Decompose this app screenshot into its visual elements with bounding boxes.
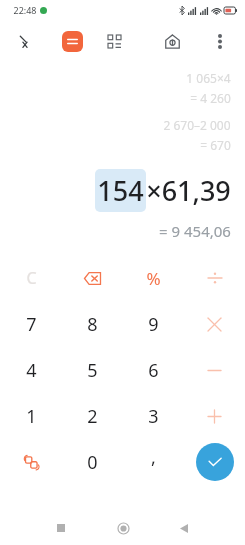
staticText: 3 — [148, 404, 159, 429]
button[interactable]: Recents — [48, 515, 74, 541]
staticText: 2 — [87, 404, 98, 429]
button[interactable]: 7 — [0, 301, 62, 347]
button[interactable]: Subtract — [184, 347, 245, 393]
button[interactable]: 2 — [62, 393, 123, 439]
button[interactable]: Scientific — [10, 26, 40, 56]
button[interactable]: 1 — [0, 393, 62, 439]
staticText: 9 — [148, 312, 159, 337]
button[interactable]: Divide — [184, 255, 245, 301]
staticText: 2 670–2 000 — [163, 117, 231, 133]
button[interactable]: 6 — [123, 347, 184, 393]
button[interactable]: Home — [110, 515, 136, 541]
staticText: 154 — [97, 172, 144, 209]
staticText: = 670 — [200, 137, 231, 153]
staticText: 22:48 — [13, 4, 37, 16]
button[interactable]: 4 — [0, 347, 62, 393]
button[interactable]: % — [123, 255, 184, 301]
button[interactable]: 9 — [123, 301, 184, 347]
button[interactable]: Convert — [0, 439, 62, 485]
staticText: , — [151, 445, 156, 470]
button[interactable]: Multiply — [184, 301, 245, 347]
button[interactable]: 3 — [123, 393, 184, 439]
staticText: 6 — [148, 358, 159, 383]
button[interactable]: Currency — [157, 26, 187, 56]
staticText: ×61,39 — [146, 172, 231, 209]
button[interactable]: Calculator — [62, 31, 83, 52]
staticText: = 4 260 — [190, 90, 231, 106]
staticText: 4 — [26, 358, 37, 383]
staticText: = 9 454,06 — [159, 221, 231, 241]
button[interactable]: More options — [205, 26, 235, 56]
staticText: 5 — [87, 358, 98, 383]
staticText: 1 — [26, 404, 37, 429]
button[interactable]: , — [123, 439, 184, 485]
staticText: 1 065×4 — [186, 70, 231, 86]
staticText: C — [26, 267, 37, 289]
staticText: 8 — [87, 312, 98, 337]
button[interactable]: 5 — [62, 347, 123, 393]
button[interactable]: Add — [184, 393, 245, 439]
button[interactable]: Backspace — [62, 255, 123, 301]
button[interactable]: Unit converter — [99, 26, 129, 56]
button[interactable]: C — [0, 255, 62, 301]
staticText: 7 — [26, 312, 37, 337]
button[interactable]: 0 — [62, 439, 123, 485]
staticText: % — [146, 267, 161, 290]
button[interactable]: 8 — [62, 301, 123, 347]
button[interactable]: Equals — [184, 439, 245, 485]
staticText: 0 — [87, 450, 98, 475]
button[interactable]: Back — [171, 515, 197, 541]
